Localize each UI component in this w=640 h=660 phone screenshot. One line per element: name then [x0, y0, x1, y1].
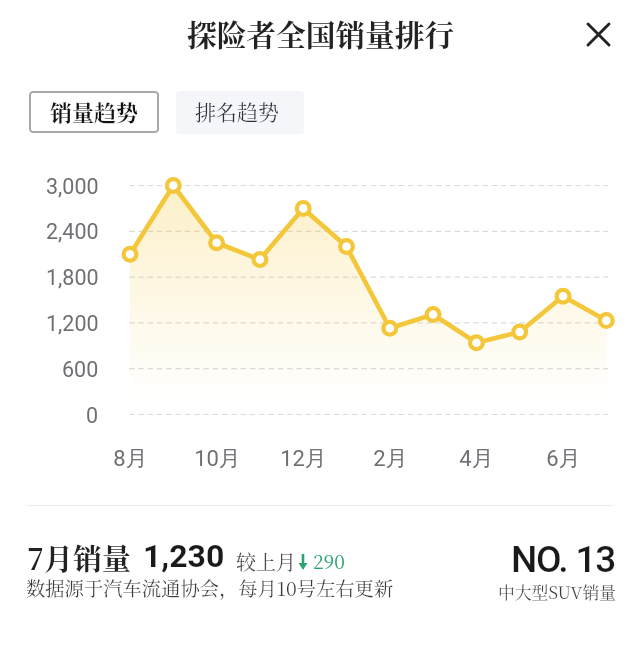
staticText: 排名趋势: [195, 96, 279, 126]
staticText: 3,000: [46, 174, 99, 199]
staticText: 7月销量: [27, 537, 132, 579]
staticText: 8月: [113, 445, 148, 473]
staticText: 探险者全国销量排行: [187, 12, 455, 55]
staticText: 中大型SUV销量: [498, 580, 617, 604]
staticText: 数据源于汽车流通协会，每月10号左右更新: [26, 574, 394, 602]
staticText: 600: [62, 357, 99, 382]
staticText: 12月: [280, 445, 327, 473]
staticText: 2月: [373, 445, 408, 473]
staticText: 1,800: [46, 265, 99, 290]
button[interactable]: 排名趋势: [176, 91, 304, 134]
staticText: 10月: [194, 445, 241, 473]
staticText: 1,200: [46, 311, 99, 336]
staticText: 2,400: [46, 219, 99, 244]
staticText: 0: [86, 403, 99, 428]
button[interactable]: Close: [576, 12, 620, 56]
staticText: NO. 13: [511, 538, 616, 581]
button[interactable]: 销量趋势: [29, 91, 159, 133]
staticText: 1,230: [143, 537, 225, 575]
staticText: 销量趋势: [50, 96, 139, 128]
staticText: 290: [313, 547, 345, 574]
staticText: 6月: [546, 445, 581, 473]
staticText: 4月: [459, 445, 494, 473]
staticText: 较上月: [236, 547, 296, 576]
